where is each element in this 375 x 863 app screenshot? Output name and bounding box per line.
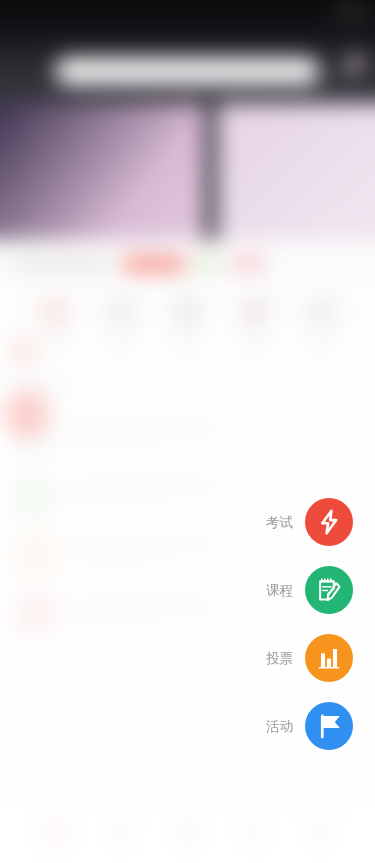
staticText: 活动 <box>266 718 293 735</box>
button[interactable]: 课程 Courses <box>266 566 375 614</box>
button[interactable]: 考试 Exams <box>266 498 375 546</box>
staticText: 投票 <box>266 650 293 667</box>
staticText: 考试 <box>266 514 293 531</box>
staticText: 9+ <box>351 57 361 68</box>
staticText: 课程 <box>266 582 293 599</box>
button[interactable]: 投票 Vote <box>266 634 375 682</box>
button[interactable]: 活动 Activities <box>266 702 375 750</box>
